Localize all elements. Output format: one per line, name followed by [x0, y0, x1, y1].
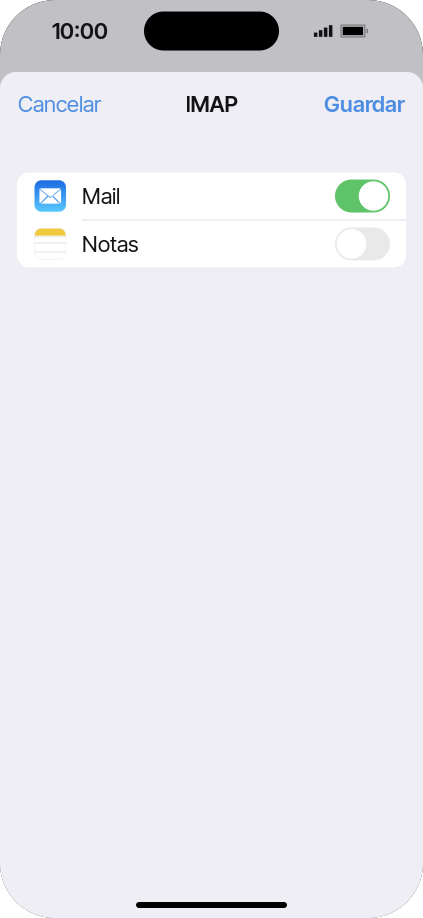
staticText: 10:00	[52, 18, 108, 44]
staticText: IMAP	[185, 91, 237, 117]
staticText: Cancelar	[18, 91, 101, 117]
staticText: Guardar	[324, 91, 405, 117]
staticText: Notas	[82, 231, 138, 257]
staticText: Mail	[82, 183, 120, 209]
button[interactable]: Notas	[17, 220, 406, 267]
button[interactable]: Cancelar	[18, 91, 101, 117]
button[interactable]: Guardar	[324, 91, 405, 117]
button[interactable]: Mail	[17, 172, 406, 219]
